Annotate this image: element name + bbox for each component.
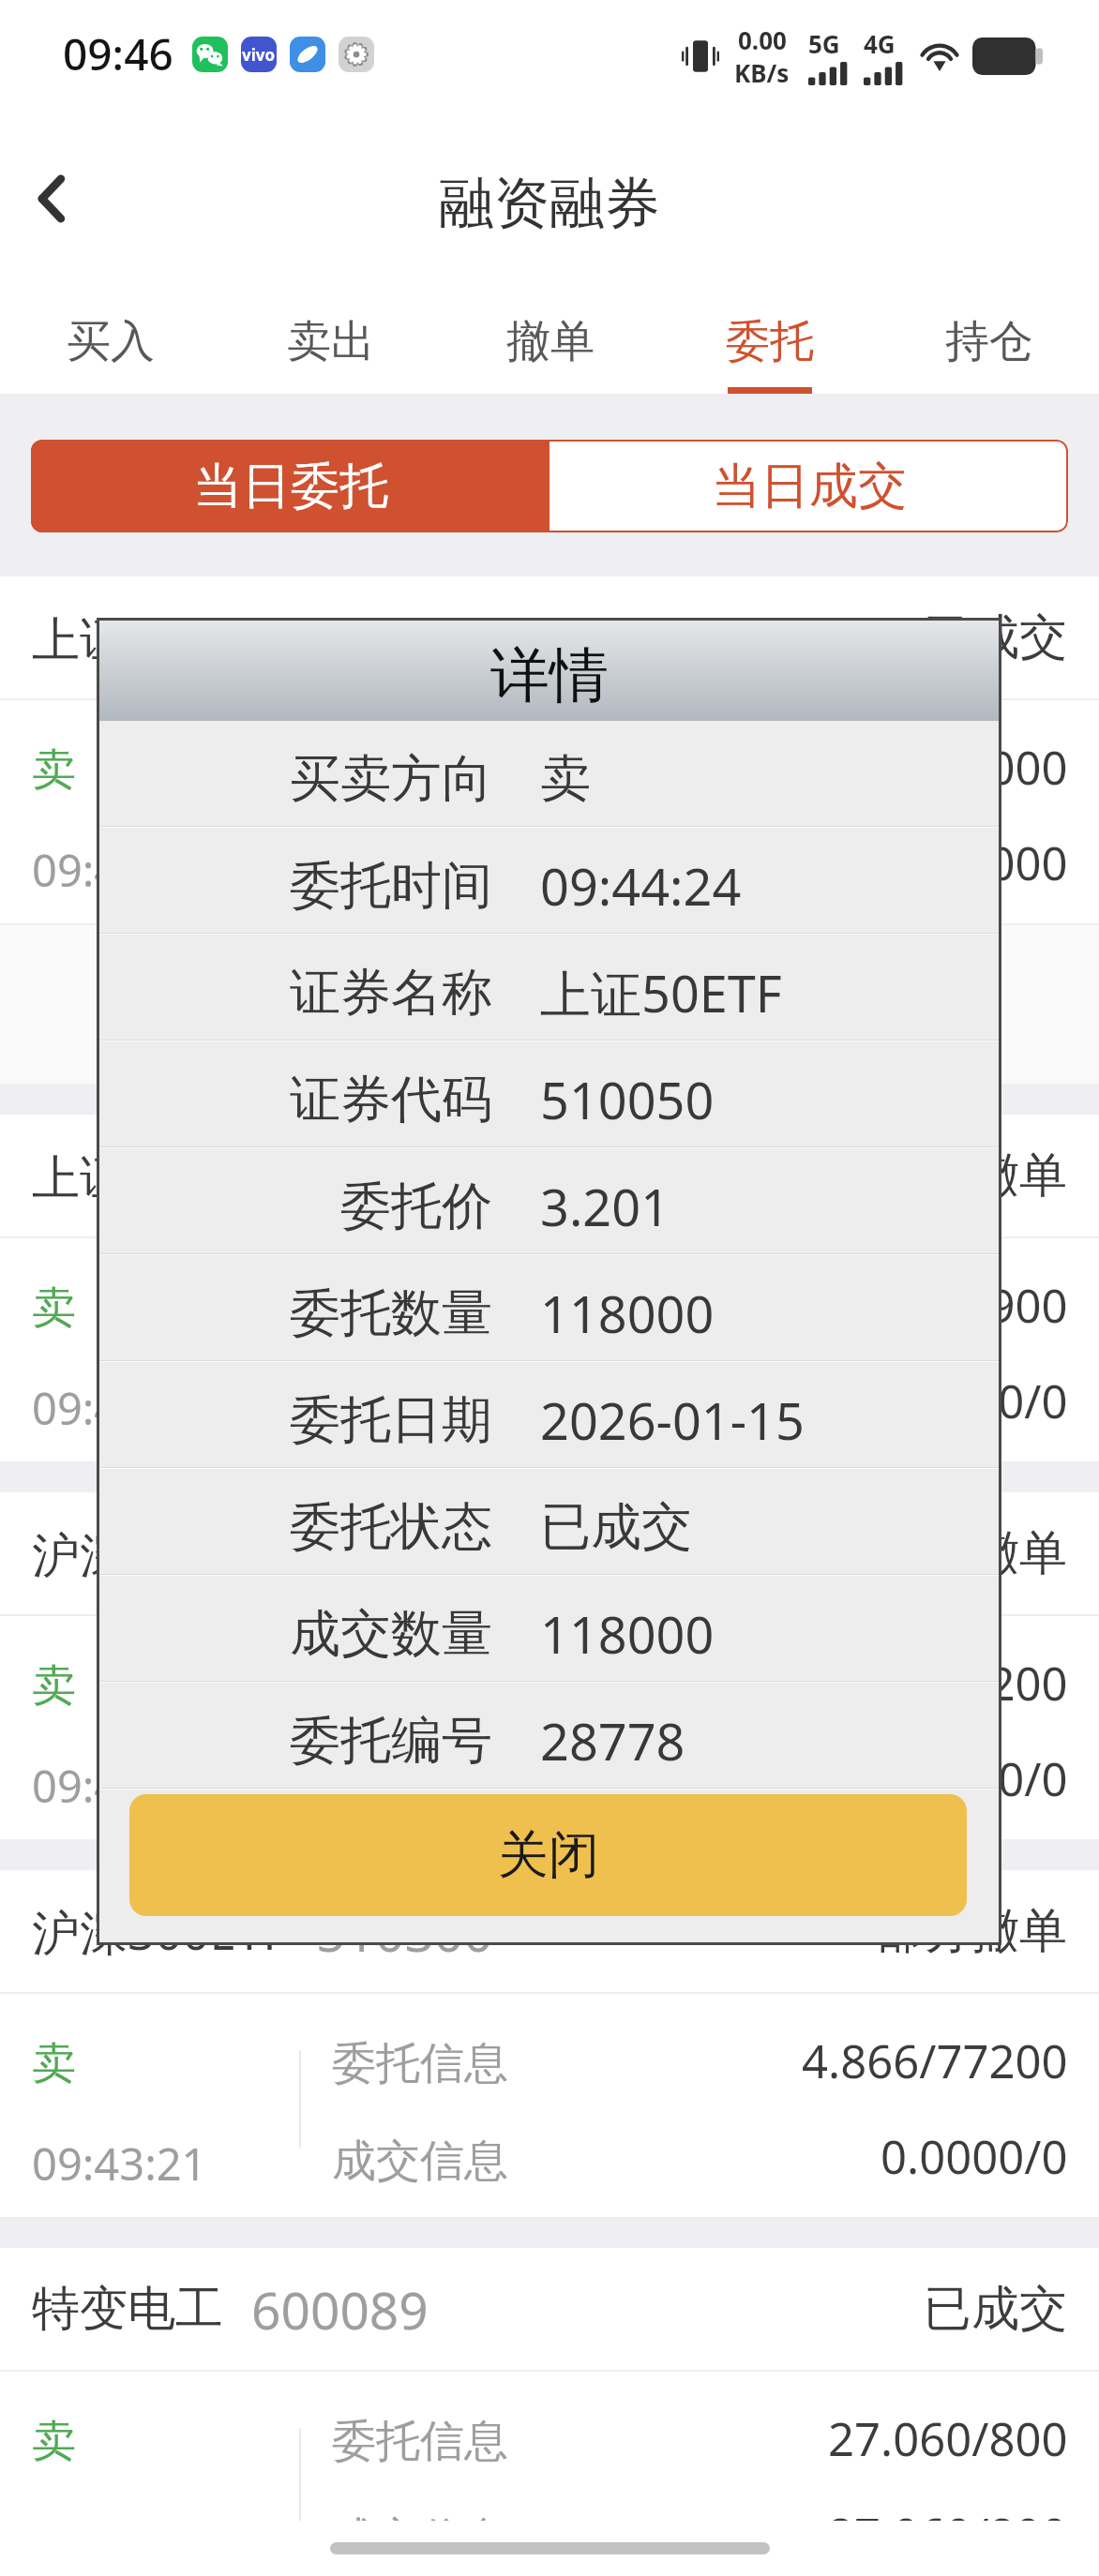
staticText: 成交信息 xyxy=(332,1756,508,1811)
staticText: 已成交 xyxy=(540,1495,692,1559)
button[interactable]: Back xyxy=(8,154,98,244)
staticText: 卖 xyxy=(32,2036,76,2091)
staticText: 沪深300ETF xyxy=(32,1520,288,1586)
staticText: 3.201 xyxy=(540,1172,670,1241)
button[interactable]: 持仓 xyxy=(880,265,1099,394)
staticText: 成交数量 xyxy=(290,1602,492,1666)
staticText: 510300 xyxy=(316,1519,493,1589)
staticText: 部分撤单 xyxy=(876,1523,1067,1583)
staticText: 510050 xyxy=(289,603,466,673)
staticText: 上证50ETF xyxy=(540,958,782,1027)
staticText: vivo xyxy=(242,44,276,66)
staticText: 持仓 xyxy=(945,314,1033,369)
staticText: 成交信息 xyxy=(332,840,508,895)
staticText: 委托价 xyxy=(340,1175,492,1238)
staticText: 卖 xyxy=(540,747,591,811)
staticText: 委托编号 xyxy=(290,1709,492,1773)
button[interactable]: 特变电工 xyxy=(0,2248,1099,2576)
button[interactable]: 当日委托 xyxy=(31,440,549,532)
staticText: 118000 xyxy=(540,1279,715,1348)
staticText: 510050 xyxy=(289,1141,466,1211)
button[interactable]: 卖出 xyxy=(220,265,441,394)
staticText: 510300 xyxy=(316,1896,493,1967)
staticText: 撤单 xyxy=(506,314,595,369)
staticText: 2026-01-15 xyxy=(540,1385,805,1455)
staticText: 证券代码 xyxy=(290,1068,492,1131)
staticText: 当日委托 xyxy=(193,456,388,517)
staticText: KB/s xyxy=(734,56,790,89)
staticText: 4.866/77200 xyxy=(802,2029,1068,2092)
staticText: 当日成交 xyxy=(712,456,907,517)
staticText: 3.200/119900 xyxy=(775,1274,1068,1337)
staticText: 0.0000/0 xyxy=(881,1747,1068,1810)
staticText: 卖出 xyxy=(287,314,375,369)
staticText: 卖 xyxy=(32,742,76,798)
staticText: 0.00 xyxy=(738,23,787,56)
staticText: 沪深300ETF xyxy=(32,1898,288,1964)
staticText: 09:46 xyxy=(63,24,173,83)
staticText: 委托信息 xyxy=(332,1281,508,1336)
button[interactable]: 买入 xyxy=(0,265,220,394)
staticText: 委托状态 xyxy=(290,1495,492,1559)
button[interactable]: 委托 xyxy=(660,265,880,394)
button[interactable]: 上证50ETF xyxy=(0,577,1099,1115)
staticText: 09:44:24 xyxy=(540,851,742,921)
staticText: 成交信息 xyxy=(332,2511,508,2567)
staticText: 委托时间 xyxy=(290,854,492,918)
staticText: 委托信息 xyxy=(332,1658,508,1714)
staticText: 委托数量 xyxy=(290,1281,492,1345)
staticText: 27.060/800 xyxy=(828,2407,1068,2470)
staticText: 已成交 xyxy=(924,607,1067,667)
staticText: 4.866/77200 xyxy=(802,1652,1068,1715)
staticText: 委托日期 xyxy=(290,1388,492,1452)
staticText: 委托信息 xyxy=(332,742,508,798)
staticText: 已成交 xyxy=(924,2279,1067,2339)
button[interactable]: 上证50ETF xyxy=(0,1115,1099,1492)
staticText: 0.0000/0 xyxy=(881,2125,1068,2188)
staticText: 09:43:21 xyxy=(32,2134,207,2194)
staticText: 上证50ETF xyxy=(32,605,261,670)
staticText: 委托 xyxy=(726,314,814,369)
staticText: 融资融券 xyxy=(439,169,660,238)
staticText: 510050 xyxy=(540,1065,715,1134)
staticText: 成交信息 xyxy=(332,1378,508,1433)
staticText: 3.201/118000 xyxy=(775,736,1068,799)
staticText: 4G xyxy=(864,27,896,60)
staticText: 5G xyxy=(808,27,840,60)
staticText: 118000 xyxy=(540,1599,715,1669)
staticText: 特变电工 xyxy=(32,2279,223,2339)
staticText: 09:43:31 xyxy=(32,1756,207,1816)
staticText: 09:44:24 xyxy=(32,840,207,900)
staticText: 3.201/118000 xyxy=(775,831,1068,894)
staticText: 证券名称 xyxy=(290,961,492,1025)
staticText: 27.060/800 xyxy=(828,2503,1068,2566)
staticText: 卖 xyxy=(32,1281,76,1336)
staticText: 详情 xyxy=(490,638,609,712)
button[interactable]: 沪深300ETF xyxy=(0,1492,1099,1870)
button[interactable]: 沪深300ETF xyxy=(0,1870,1099,2248)
staticText: 上证50ETF xyxy=(32,1143,261,1208)
staticText: 买入 xyxy=(67,314,155,369)
staticText: 关闭 xyxy=(498,1823,599,1887)
button[interactable]: 撤单 xyxy=(441,265,660,394)
staticText: 卖 xyxy=(32,2414,76,2469)
staticText: 28778 xyxy=(540,1706,685,1775)
staticText: 部分撤单 xyxy=(876,1901,1067,1961)
staticText: 成交信息 xyxy=(332,2134,508,2189)
staticText: 600089 xyxy=(251,2274,429,2344)
button[interactable]: 关闭 xyxy=(129,1794,967,1916)
staticText: 买卖方向 xyxy=(290,747,492,811)
button[interactable]: 当日成交 xyxy=(549,440,1068,532)
staticText: 卖 xyxy=(32,1658,76,1714)
staticText: 委托信息 xyxy=(332,2036,508,2091)
staticText: 委托信息 xyxy=(332,2414,508,2469)
staticText: 09:43:55 xyxy=(32,1378,207,1438)
staticText: 部分撤单 xyxy=(876,1146,1067,1206)
staticText: 0.0000/0 xyxy=(881,1370,1068,1432)
